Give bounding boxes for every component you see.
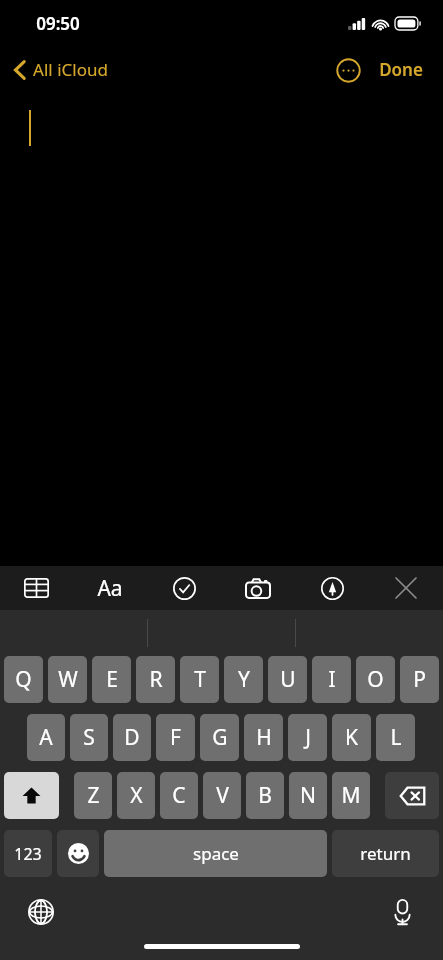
button[interactable]: R (136, 656, 175, 703)
button[interactable]: K (332, 714, 371, 761)
button[interactable]: A (27, 714, 65, 761)
staticText: R (149, 665, 163, 694)
button[interactable]: H (244, 714, 283, 761)
button[interactable]: Y (224, 656, 263, 703)
staticText: A (39, 723, 53, 752)
button[interactable]: Markup (295, 566, 369, 610)
button[interactable]: G (200, 714, 239, 761)
staticText: O (367, 665, 384, 694)
staticText: C (172, 781, 186, 810)
staticText: T (194, 665, 206, 694)
button[interactable]: V (203, 772, 241, 819)
staticText: All iCloud (33, 58, 108, 81)
button[interactable]: C (160, 772, 198, 819)
staticText: B (258, 781, 272, 810)
button[interactable]: space (104, 830, 327, 877)
button[interactable]: E (92, 656, 131, 703)
button[interactable]: return (332, 830, 439, 877)
button[interactable]: Backspace (385, 772, 439, 819)
button[interactable]: N (289, 772, 327, 819)
button[interactable]: I (312, 656, 351, 703)
button[interactable]: P (400, 656, 439, 703)
button[interactable]: L (376, 714, 415, 761)
staticText: Y (238, 665, 250, 694)
button[interactable]: More options (333, 55, 363, 85)
staticText: Q (15, 665, 32, 694)
button[interactable]: S (70, 714, 108, 761)
button[interactable]: O (356, 656, 395, 703)
button[interactable]: Dictation (383, 893, 421, 931)
button[interactable]: T (180, 656, 219, 703)
staticText: M (341, 781, 361, 810)
staticText: 123 (14, 843, 42, 865)
button[interactable]: Shift (4, 772, 59, 819)
staticText: E (106, 665, 118, 694)
button[interactable]: F (156, 714, 195, 761)
staticText: I (328, 665, 336, 694)
staticText: P (413, 665, 426, 694)
staticText: N (300, 781, 316, 810)
staticText: X (130, 781, 143, 810)
button[interactable]: Q (4, 656, 43, 703)
button[interactable]: Change keyboard (22, 893, 60, 931)
button[interactable]: All iCloud (10, 54, 112, 85)
button[interactable]: X (117, 772, 155, 819)
button[interactable]: Close keyboard (369, 566, 443, 610)
staticText: Z (87, 781, 100, 810)
button[interactable]: D (113, 714, 151, 761)
staticText: K (345, 723, 358, 752)
staticText: H (256, 723, 272, 752)
staticText: 09:50 (36, 12, 80, 35)
staticText: V (216, 781, 229, 810)
button[interactable]: Emoji (57, 830, 99, 877)
button[interactable]: Checklist (147, 566, 221, 610)
staticText: D (124, 723, 140, 752)
button[interactable]: Z (74, 772, 112, 819)
staticText: L (390, 723, 402, 752)
button[interactable]: Camera (221, 566, 295, 610)
staticText: return (360, 842, 411, 865)
button[interactable]: W (48, 656, 87, 703)
staticText: Done (379, 58, 423, 81)
staticText: G (212, 723, 228, 752)
staticText: space (193, 842, 239, 865)
staticText: U (280, 665, 296, 694)
button[interactable]: 123 (4, 830, 52, 877)
button[interactable]: M (332, 772, 370, 819)
button[interactable]: U (268, 656, 307, 703)
button[interactable]: Format (73, 566, 147, 610)
button[interactable]: J (288, 714, 327, 761)
button[interactable]: Table (0, 566, 73, 610)
staticText: F (170, 723, 181, 752)
staticText: Aa (97, 574, 123, 603)
button[interactable]: Done (375, 54, 427, 85)
staticText: S (83, 723, 95, 752)
staticText: W (58, 665, 78, 694)
staticText: J (305, 723, 311, 752)
button[interactable]: B (246, 772, 284, 819)
